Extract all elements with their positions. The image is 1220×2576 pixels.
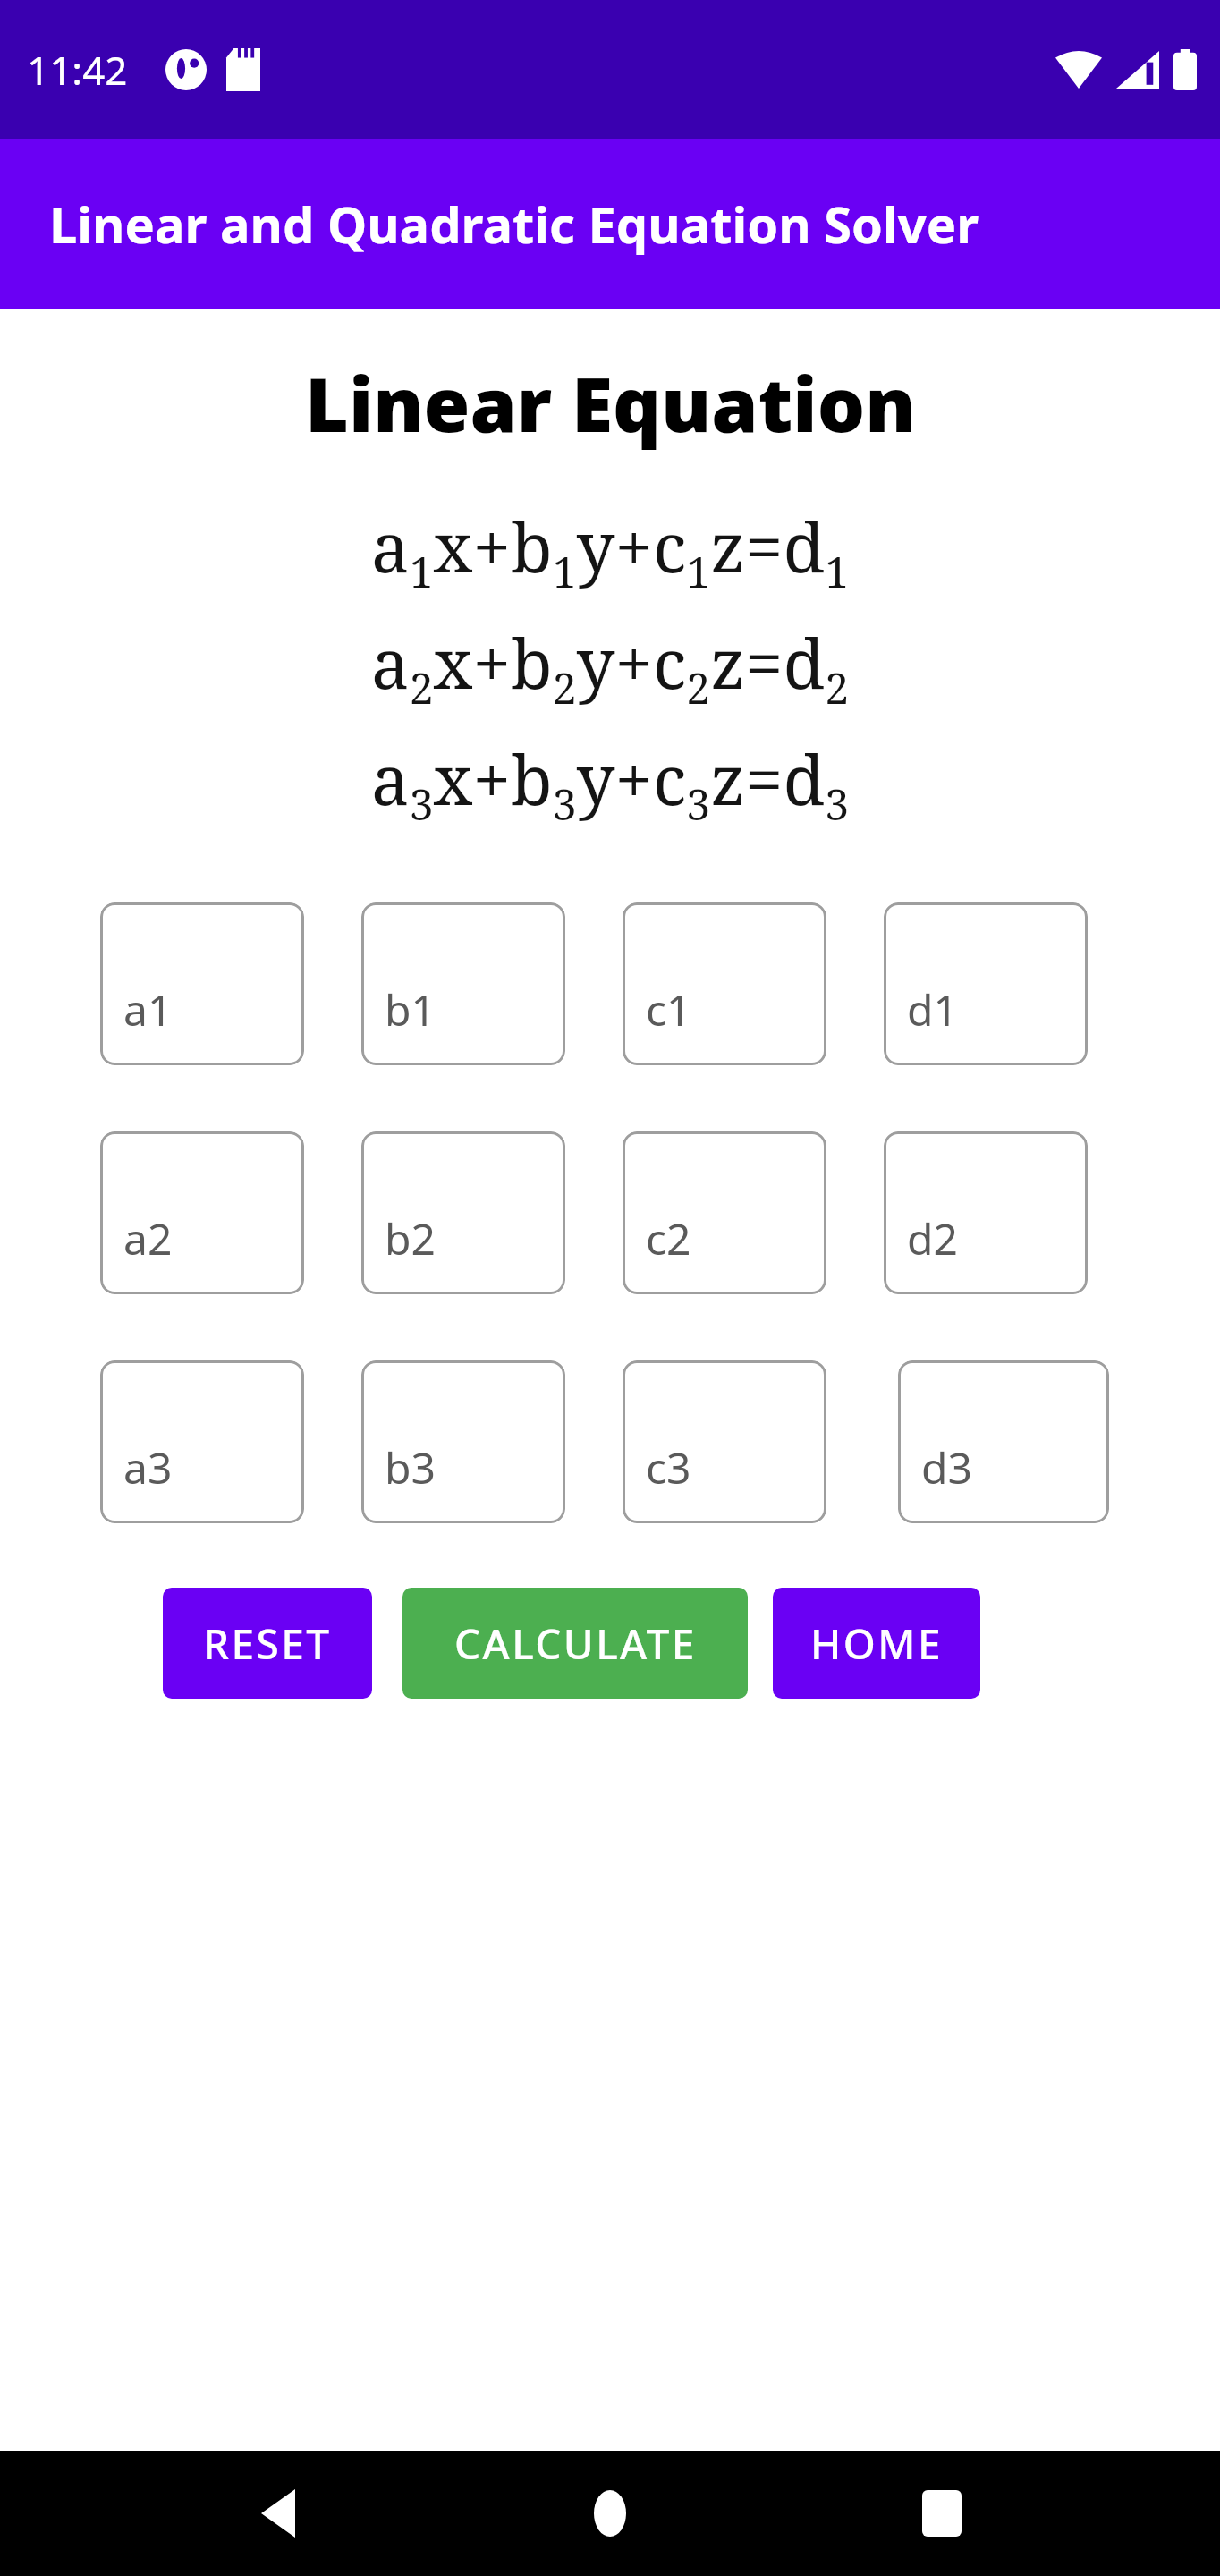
staticText: HOME bbox=[810, 1615, 943, 1672]
button[interactable]: CALCULATE bbox=[402, 1588, 748, 1699]
button[interactable]: Back bbox=[225, 2460, 332, 2567]
staticText: Linear Equation bbox=[305, 352, 916, 453]
staticText: b2 bbox=[385, 1209, 436, 1267]
staticText: c2 bbox=[646, 1209, 691, 1267]
staticText: a3 bbox=[123, 1438, 173, 1496]
staticText: Linear and Quadratic Equation Solver bbox=[49, 190, 979, 258]
staticText: a3x+b3y+c3z=d3 bbox=[371, 733, 849, 833]
button[interactable]: a1 bbox=[100, 902, 304, 1065]
staticText: a2x+b2y+c2z=d2 bbox=[371, 616, 849, 716]
button[interactable]: Recent apps bbox=[888, 2460, 995, 2567]
button[interactable]: c2 bbox=[623, 1131, 826, 1294]
staticText: d3 bbox=[921, 1438, 972, 1496]
staticText: CALCULATE bbox=[454, 1615, 697, 1672]
staticText: c1 bbox=[646, 980, 691, 1038]
button[interactable]: b3 bbox=[361, 1360, 565, 1523]
button[interactable]: a3 bbox=[100, 1360, 304, 1523]
staticText: a1 bbox=[123, 980, 173, 1038]
button[interactable]: HOME bbox=[773, 1588, 980, 1699]
staticText: a2 bbox=[123, 1209, 173, 1267]
button[interactable]: c1 bbox=[623, 902, 826, 1065]
button[interactable]: a2 bbox=[100, 1131, 304, 1294]
button[interactable]: d3 bbox=[898, 1360, 1109, 1523]
staticText: c3 bbox=[646, 1438, 691, 1496]
button[interactable]: d2 bbox=[884, 1131, 1088, 1294]
button[interactable]: Home bbox=[556, 2460, 664, 2567]
staticText: a1x+b1y+c1z=d1 bbox=[371, 500, 849, 600]
staticText: b1 bbox=[385, 980, 436, 1038]
button[interactable]: RESET bbox=[163, 1588, 372, 1699]
staticText: RESET bbox=[203, 1615, 332, 1672]
button[interactable]: c3 bbox=[623, 1360, 826, 1523]
staticText: b3 bbox=[385, 1438, 436, 1496]
staticText: d2 bbox=[907, 1209, 958, 1267]
button[interactable]: b2 bbox=[361, 1131, 565, 1294]
staticText: d1 bbox=[907, 980, 958, 1038]
button[interactable]: d1 bbox=[884, 902, 1088, 1065]
button[interactable]: b1 bbox=[361, 902, 565, 1065]
staticText: 11:42 bbox=[27, 43, 128, 97]
